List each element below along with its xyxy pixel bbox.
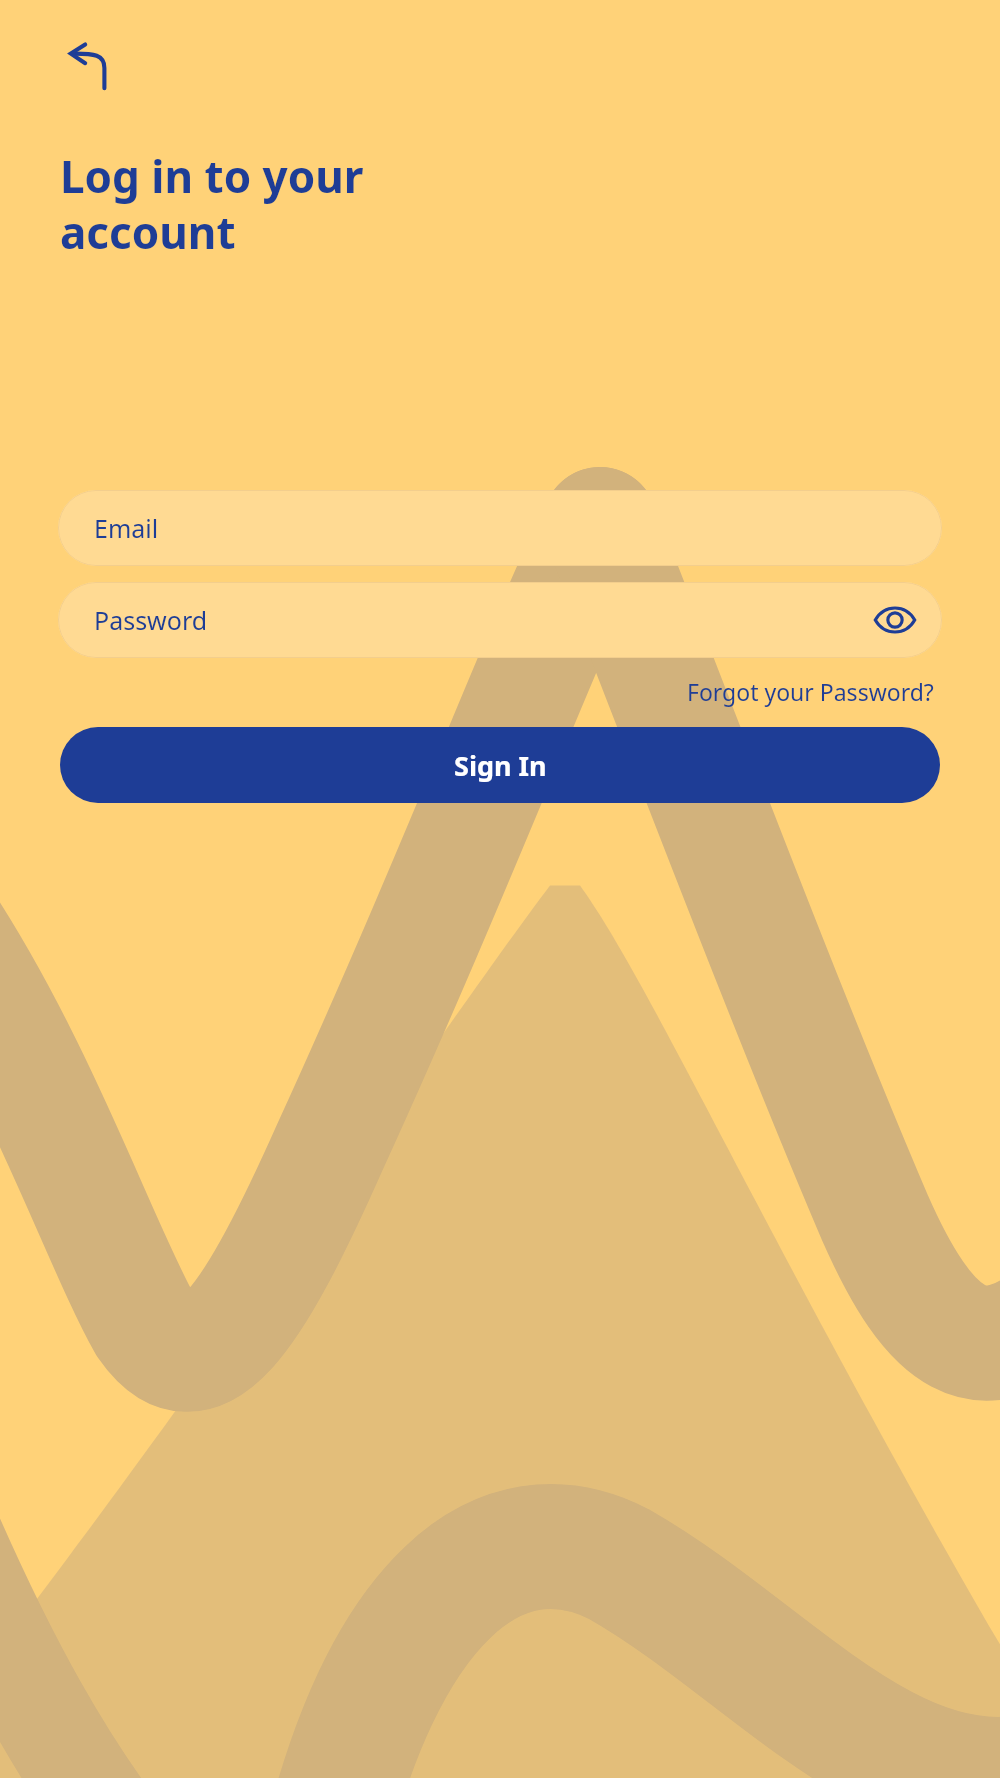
staticText: Sign In bbox=[454, 747, 547, 784]
button[interactable]: Sign In bbox=[60, 727, 940, 803]
staticText: Email bbox=[94, 511, 159, 545]
staticText: Password bbox=[94, 603, 208, 637]
button[interactable]: Back bbox=[58, 36, 122, 100]
staticText: Log in to your account bbox=[60, 146, 364, 262]
staticText: Forgot your Password? bbox=[687, 676, 934, 707]
button[interactable]: Password bbox=[58, 582, 942, 658]
button[interactable]: Forgot your Password? bbox=[681, 672, 940, 711]
button[interactable]: Show password bbox=[870, 595, 920, 645]
button[interactable]: Email bbox=[58, 490, 942, 566]
